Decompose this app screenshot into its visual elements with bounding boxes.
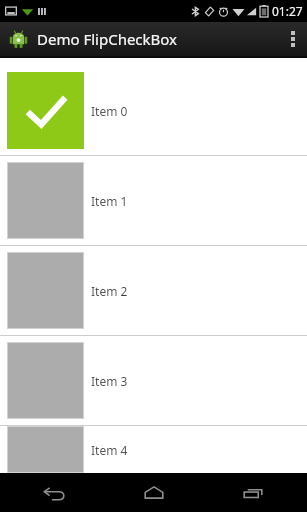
button[interactable]: Item 4 bbox=[0, 426, 307, 473]
button[interactable]: Home bbox=[109, 473, 199, 512]
staticText: Demo FlipCheckBox bbox=[37, 29, 178, 49]
button[interactable]: Recent apps bbox=[208, 473, 298, 512]
button[interactable]: Item 3 bbox=[0, 336, 307, 425]
staticText: 01:27 bbox=[272, 3, 303, 19]
staticText: Item 4 bbox=[91, 442, 128, 458]
staticText: Item 1 bbox=[91, 193, 128, 209]
button[interactable]: Back bbox=[9, 473, 99, 512]
button[interactable]: More options bbox=[279, 22, 307, 56]
button[interactable]: Item 0 bbox=[0, 66, 307, 155]
staticText: Item 2 bbox=[91, 283, 128, 299]
staticText: Item 0 bbox=[91, 103, 128, 119]
staticText: Item 3 bbox=[91, 373, 128, 389]
button[interactable]: Item 1 bbox=[0, 156, 307, 245]
button[interactable]: Item 2 bbox=[0, 246, 307, 335]
